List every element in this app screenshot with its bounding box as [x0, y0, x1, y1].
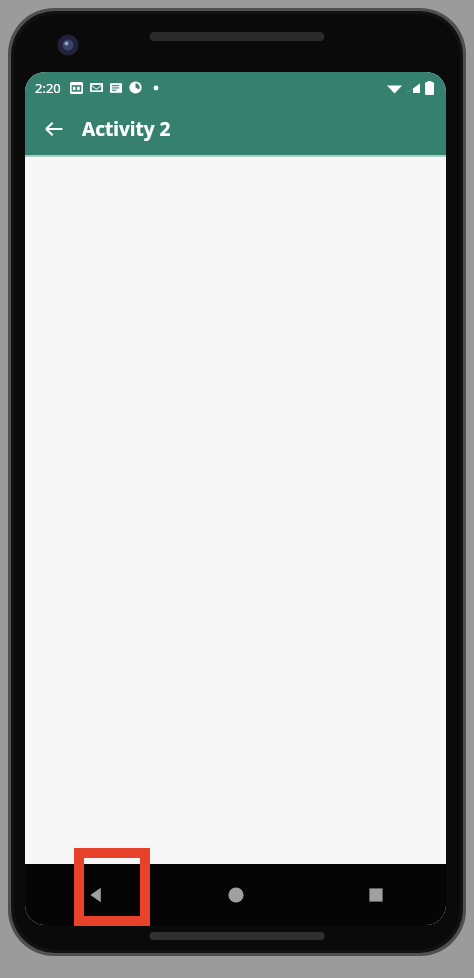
staticText: Activity 2	[82, 116, 171, 142]
button[interactable]: Recent apps	[306, 864, 446, 925]
button[interactable]: Back	[25, 864, 166, 925]
staticText: 2:20	[35, 79, 61, 97]
button[interactable]: Home	[166, 864, 306, 925]
button[interactable]: Navigate up	[36, 111, 72, 147]
